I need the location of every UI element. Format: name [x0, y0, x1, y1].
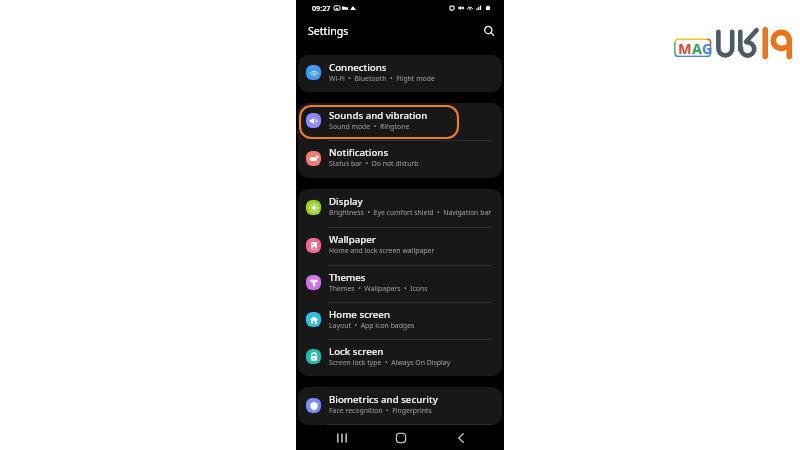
staticText: M: [678, 39, 692, 59]
button[interactable]: Back: [454, 425, 468, 450]
staticText: Biometrics and security: [329, 393, 438, 406]
staticText: Lock screen: [329, 345, 384, 358]
staticText: Notifications: [329, 146, 389, 159]
staticText: Themes: [329, 271, 366, 284]
button[interactable]: Lock screen: [298, 339, 502, 376]
staticText: Home screen: [329, 308, 390, 321]
staticText: Settings: [308, 24, 349, 38]
button[interactable]: Home screen: [298, 302, 502, 339]
button[interactable]: Themes: [298, 265, 502, 302]
staticText: Brightness • Eye comfort shield • Naviga…: [329, 208, 492, 217]
staticText: G: [702, 39, 713, 59]
staticText: Status bar • Do not disturb: [329, 159, 419, 168]
button[interactable]: Connections: [298, 55, 502, 92]
button[interactable]: Wallpaper: [298, 227, 502, 265]
staticText: Wallpaper: [329, 233, 376, 246]
button[interactable]: Biometrics and security: [298, 387, 502, 425]
staticText: 09:27: [312, 3, 331, 13]
button[interactable]: Sounds and vibration: [298, 103, 502, 140]
button[interactable]: Search: [480, 22, 498, 40]
staticText: Layout • App icon badges: [329, 321, 415, 330]
staticText: Connections: [329, 61, 387, 74]
staticText: Sound mode • Ringtone: [329, 122, 410, 131]
button[interactable]: Display: [298, 189, 502, 227]
button[interactable]: Notifications: [298, 140, 502, 178]
staticText: Display: [329, 195, 363, 208]
staticText: Home and lock screen wallpaper: [329, 246, 435, 255]
staticText: Screen lock type • Always On Display: [329, 358, 451, 367]
staticText: Sounds and vibration: [329, 109, 428, 122]
button[interactable]: Recents: [335, 425, 349, 450]
staticText: A: [692, 39, 702, 59]
button[interactable]: Home: [394, 425, 408, 450]
staticText: Themes • Wallpapers • Icons: [329, 284, 428, 293]
staticText: Wi-Fi • Bluetooth • Flight mode: [329, 74, 435, 83]
staticText: Face recognition • Fingerprints: [329, 406, 432, 415]
